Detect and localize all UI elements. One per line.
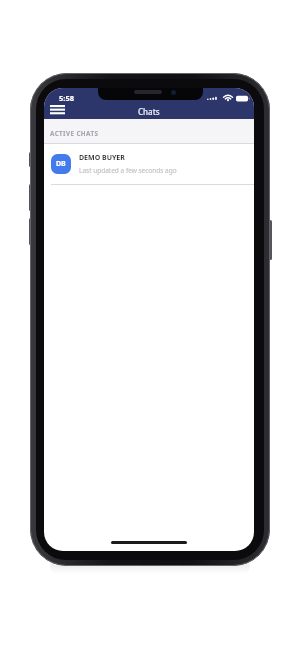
staticText: DEMO BUYER [79,153,125,163]
button[interactable]: DB [44,144,254,184]
button[interactable] [46,101,69,118]
staticText: DB [56,159,66,169]
staticText: Chats [138,106,160,117]
staticText: 5:58 [59,93,74,103]
staticText: Last updated a few seconds ago [79,166,177,175]
staticText: ACTIVE CHATS [50,129,99,138]
